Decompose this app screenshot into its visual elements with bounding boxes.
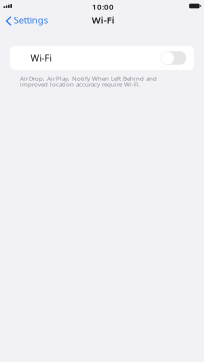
staticText: AirDrop, AirPlay, Notify When Left Behin… [20,74,157,83]
staticText: Settings [14,14,48,26]
staticText: 10:00 [92,1,114,12]
staticText: improved location accuracy require Wi-Fi… [20,80,141,88]
staticText: Wi-Fi [30,52,51,64]
staticText: Wi-Fi [92,14,115,26]
button[interactable]: Wi-Fi [10,46,194,70]
button[interactable]: Settings [0,11,53,27]
